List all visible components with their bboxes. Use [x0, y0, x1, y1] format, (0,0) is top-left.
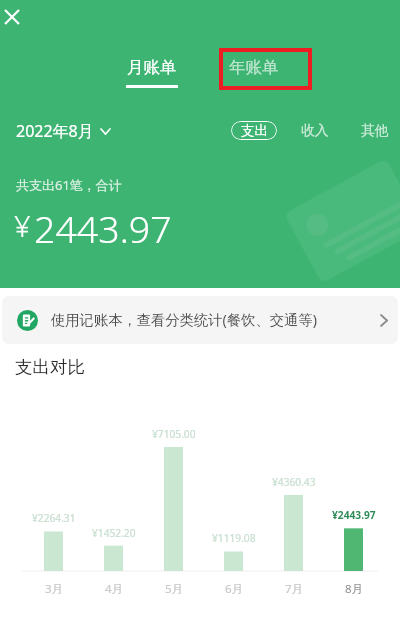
staticText: 收入 — [301, 122, 329, 139]
staticText: 2022年8月 — [16, 120, 94, 142]
staticText: 共支出61笔，合计 — [16, 176, 122, 194]
button[interactable]: 其他 — [361, 121, 389, 140]
staticText: 支出对比 — [15, 356, 85, 378]
staticText: 使用记账本，查看分类统计(餐饮、交通等) — [51, 310, 317, 330]
staticText: 4月 — [105, 581, 124, 597]
button[interactable]: 6月 1119.08 — [207, 425, 261, 597]
staticText: 月账单 — [127, 57, 177, 78]
button[interactable]: 2022年8月 — [16, 120, 111, 142]
button[interactable]: 支出 — [231, 121, 277, 140]
button[interactable]: 年账单 — [216, 57, 292, 89]
button[interactable]: 4月 1452.20 — [87, 425, 141, 597]
button[interactable]: 使用记账本，查看分类统计(餐饮、交通等) — [2, 296, 398, 344]
staticText: 年账单 — [229, 57, 279, 78]
button[interactable]: Close — [0, 0, 29, 34]
staticText: 支出 — [241, 122, 268, 139]
button[interactable]: 7月 4360.43 — [267, 425, 321, 597]
staticText: 7月 — [285, 581, 304, 597]
staticText: 8月 — [345, 581, 364, 597]
button[interactable]: 收入 — [301, 121, 329, 140]
staticText: ¥1452.20 — [92, 526, 136, 540]
staticText: 3月 — [45, 581, 64, 597]
staticText: 其他 — [361, 122, 389, 139]
staticText: 5月 — [165, 581, 184, 597]
staticText: 2443.97 — [34, 203, 172, 254]
staticText: ¥4360.43 — [272, 475, 316, 489]
button[interactable]: 5月 7105.00 — [147, 425, 201, 597]
staticText: ¥2264.31 — [32, 511, 76, 525]
button[interactable]: 8月 2443.97 — [327, 425, 381, 597]
staticText: 6月 — [225, 581, 244, 597]
button[interactable]: 3月 2264.31 — [27, 425, 81, 597]
staticText: ¥1119.08 — [212, 531, 256, 545]
staticText: ¥ — [14, 206, 31, 245]
staticText: ¥2443.97 — [332, 508, 376, 522]
button[interactable]: 月账单 — [114, 57, 190, 97]
staticText: ¥7105.00 — [152, 427, 196, 441]
